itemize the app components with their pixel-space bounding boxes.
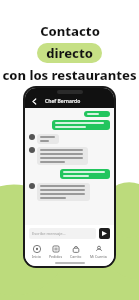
button[interactable]: Send: [99, 228, 110, 239]
staticText: Mi Cuenta: [90, 254, 107, 259]
button[interactable]: Mi Cuenta: [89, 245, 108, 259]
button[interactable]: Inicio: [31, 245, 42, 259]
button[interactable]: [84, 111, 110, 117]
staticText: Escribe mensaje...: [32, 231, 66, 236]
button[interactable]: Pedidos: [48, 245, 64, 259]
button[interactable]: Back: [29, 96, 39, 106]
staticText: con los restaurantes: [2, 66, 137, 84]
staticText: Chef Bernardo: [45, 98, 81, 105]
staticText: Inicio: [32, 254, 41, 259]
staticText: Carrito: [70, 254, 82, 259]
staticText: Pedidos: [49, 254, 63, 259]
button[interactable]: [60, 169, 110, 179]
button[interactable]: Escribe mensaje...: [29, 228, 96, 239]
staticText: Contacto: [40, 22, 100, 40]
button[interactable]: [37, 183, 90, 201]
button[interactable]: [37, 147, 88, 165]
staticText: directo: [46, 44, 93, 62]
button[interactable]: Carrito: [69, 245, 83, 259]
button[interactable]: [52, 120, 110, 130]
button[interactable]: [37, 134, 59, 144]
